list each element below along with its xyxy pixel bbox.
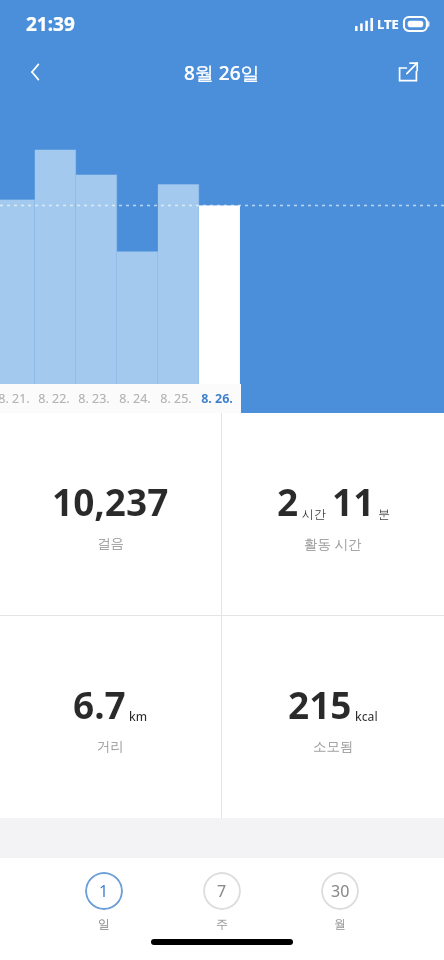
button[interactable]: 6.7: [0, 616, 221, 818]
staticText: 걸음: [97, 535, 124, 552]
staticText: 8. 21.: [0, 390, 30, 407]
staticText: 일: [98, 916, 110, 931]
button[interactable]: 215: [222, 616, 444, 818]
staticText: 8. 22.: [38, 390, 70, 407]
staticText: 8. 26.: [201, 390, 233, 407]
button[interactable]: 30: [315, 870, 365, 933]
button[interactable]: 7: [197, 870, 247, 933]
staticText: 11: [332, 476, 375, 526]
staticText: 6.7: [73, 679, 126, 729]
button[interactable]: 10,237: [0, 413, 221, 615]
button[interactable]: Share: [382, 46, 434, 98]
button[interactable]: 1: [79, 870, 129, 933]
staticText: 시간: [302, 506, 326, 521]
staticText: 주: [216, 916, 228, 931]
staticText: 10,237: [52, 476, 169, 526]
staticText: kcal: [355, 708, 378, 724]
staticText: 분: [378, 506, 390, 521]
staticText: LTE: [377, 15, 399, 33]
staticText: 활동 시간: [304, 535, 362, 553]
staticText: 30: [331, 880, 350, 902]
staticText: km: [129, 708, 148, 724]
staticText: 2: [277, 476, 299, 526]
staticText: 7: [217, 880, 227, 902]
staticText: 소모됨: [313, 738, 354, 755]
staticText: 8. 25.: [160, 390, 192, 407]
staticText: 1: [99, 880, 109, 902]
button[interactable]: Back: [10, 46, 62, 98]
button[interactable]: 2: [222, 413, 444, 615]
staticText: 215: [288, 679, 352, 729]
staticText: 8. 23.: [78, 390, 110, 407]
staticText: 8월 26일: [184, 60, 260, 86]
staticText: 21:39: [26, 11, 75, 37]
staticText: 거리: [97, 738, 124, 755]
staticText: 월: [334, 916, 346, 931]
staticText: 8. 24.: [119, 390, 151, 407]
